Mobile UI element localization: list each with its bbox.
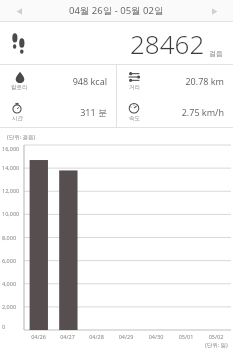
staticText: 311 분 [23,106,107,118]
staticText: 10,000 [2,210,20,217]
staticText: 04/30 [141,333,171,340]
staticText: 04월 26일 - 05월 02일 [69,4,164,17]
staticText: 4,000 [2,280,17,287]
staticText: 28462 [130,26,205,61]
staticText: 04/29 [111,333,141,340]
button[interactable]: Next week [204,1,224,21]
staticText: 2.75 km/h [140,106,224,118]
staticText: 걸음 [209,49,223,58]
staticText: (단위: 걸음) [7,133,36,141]
staticText: 칼로리 [11,84,28,91]
staticText: 8,000 [2,234,17,241]
staticText: 0 [2,323,6,330]
staticText: 05/02 [201,333,231,340]
staticText: 거리 [129,84,140,91]
staticText: 2,000 [2,303,17,310]
staticText: 04/28 [82,333,111,340]
staticText: 16,000 [2,145,20,152]
staticText: 6,000 [2,257,17,264]
staticText: 시간 [12,115,23,122]
staticText: 948 kcal [28,75,107,87]
staticText: 속도 [129,115,140,122]
staticText: 05/01 [171,333,201,340]
staticText: 04/26 [24,333,53,340]
button[interactable]: 칼로리 [0,65,116,96]
staticText: 12,000 [2,187,20,194]
button[interactable]: 시간 [0,96,116,127]
staticText: 20.78 km [140,75,224,87]
staticText: 14,000 [2,164,20,171]
button[interactable]: 속도 [117,96,233,127]
button[interactable]: 거리 [117,65,233,96]
staticText: 04/27 [53,333,82,340]
button[interactable]: Previous week [9,1,29,21]
staticText: (단위: 일) [205,341,228,349]
button[interactable]: 28462 [0,22,233,64]
